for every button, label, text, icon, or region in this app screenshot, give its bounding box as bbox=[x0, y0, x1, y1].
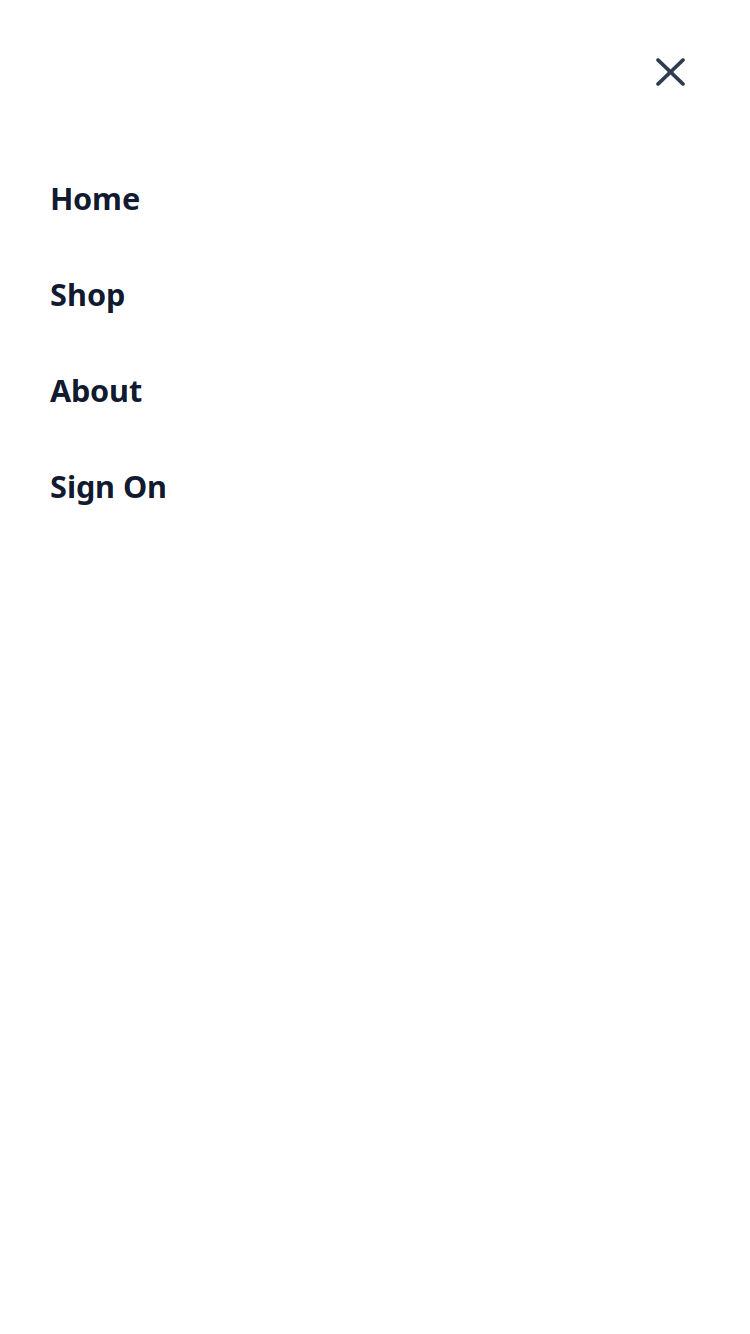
staticText: Sign On bbox=[50, 466, 167, 506]
button[interactable]: About bbox=[50, 369, 142, 411]
button[interactable]: Home bbox=[50, 177, 140, 219]
button[interactable]: Sign On bbox=[50, 465, 167, 507]
staticText: Shop bbox=[50, 274, 125, 314]
button[interactable]: Shop bbox=[50, 273, 125, 315]
staticText: Home bbox=[50, 178, 140, 218]
staticText: About bbox=[50, 370, 142, 410]
button[interactable]: Close menu bbox=[632, 0, 750, 110]
